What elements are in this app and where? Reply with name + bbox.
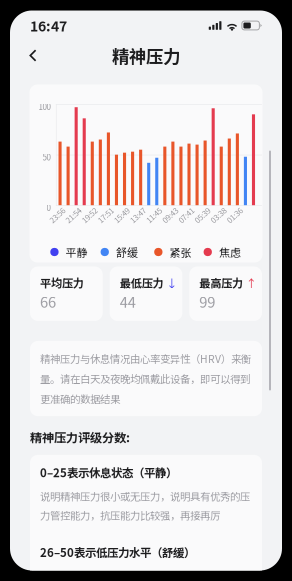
staticText: 09:43 — [161, 210, 179, 221]
staticText: 平均压力 — [40, 274, 84, 291]
staticText: 精神压力评级分数: — [30, 428, 130, 446]
staticText: 更准确的数据结果 — [40, 391, 120, 406]
staticText: 17:51 — [96, 210, 114, 221]
staticText: 01:36 — [225, 210, 243, 221]
staticText: 19:52 — [80, 210, 98, 221]
button[interactable]: 平均压力 — [30, 266, 103, 321]
staticText: ↑ — [246, 274, 257, 291]
staticText: 21:54 — [64, 210, 82, 221]
staticText: 最低压力 — [120, 274, 164, 291]
staticText: 精神压力与休息情况由心率变异性（HRV）来衡 — [40, 351, 251, 366]
button[interactable]: 最高压力 — [189, 266, 262, 321]
staticText: 说明精神压力很小或无压力，说明具有优秀的压 — [40, 488, 250, 504]
staticText: 0–25表示休息状态（平静） — [40, 464, 177, 480]
button[interactable]: 最低压力 — [110, 266, 182, 321]
staticText: 26–50表示低压力水平（舒缓） — [40, 544, 195, 560]
staticText: 紧张 — [169, 244, 191, 260]
staticText: 05:39 — [193, 210, 211, 221]
staticText: 03:38 — [209, 210, 227, 221]
staticText: 最高压力 — [199, 274, 243, 291]
staticText: 力管控能力，抗压能力比较强，再接再厉 — [40, 508, 220, 523]
staticText: 平静 — [66, 244, 88, 260]
staticText: 23:56 — [48, 210, 66, 221]
staticText: 15:49 — [113, 210, 131, 221]
staticText: 0 — [46, 202, 50, 213]
staticText: 44 — [120, 291, 136, 312]
staticText: 99 — [199, 291, 215, 312]
button[interactable]: Back — [20, 42, 46, 69]
staticText: 13:47 — [129, 210, 147, 221]
staticText: 07:41 — [177, 210, 195, 221]
staticText: 舒缓 — [116, 244, 138, 260]
staticText: 16:47 — [30, 15, 67, 36]
staticText: 精神压力处于中等水平，说明具有良好的压力管 — [40, 568, 250, 581]
staticText: 精神压力 — [112, 43, 180, 68]
staticText: 100 — [38, 101, 50, 112]
staticText: 50 — [42, 151, 50, 163]
staticText: 焦虑 — [219, 244, 241, 260]
staticText: 66 — [40, 291, 56, 312]
staticText: 11:45 — [145, 210, 163, 221]
staticText: 量。请在白天及夜晚均佩戴此设备，即可以得到 — [40, 371, 250, 386]
staticText: ↓ — [166, 274, 177, 291]
